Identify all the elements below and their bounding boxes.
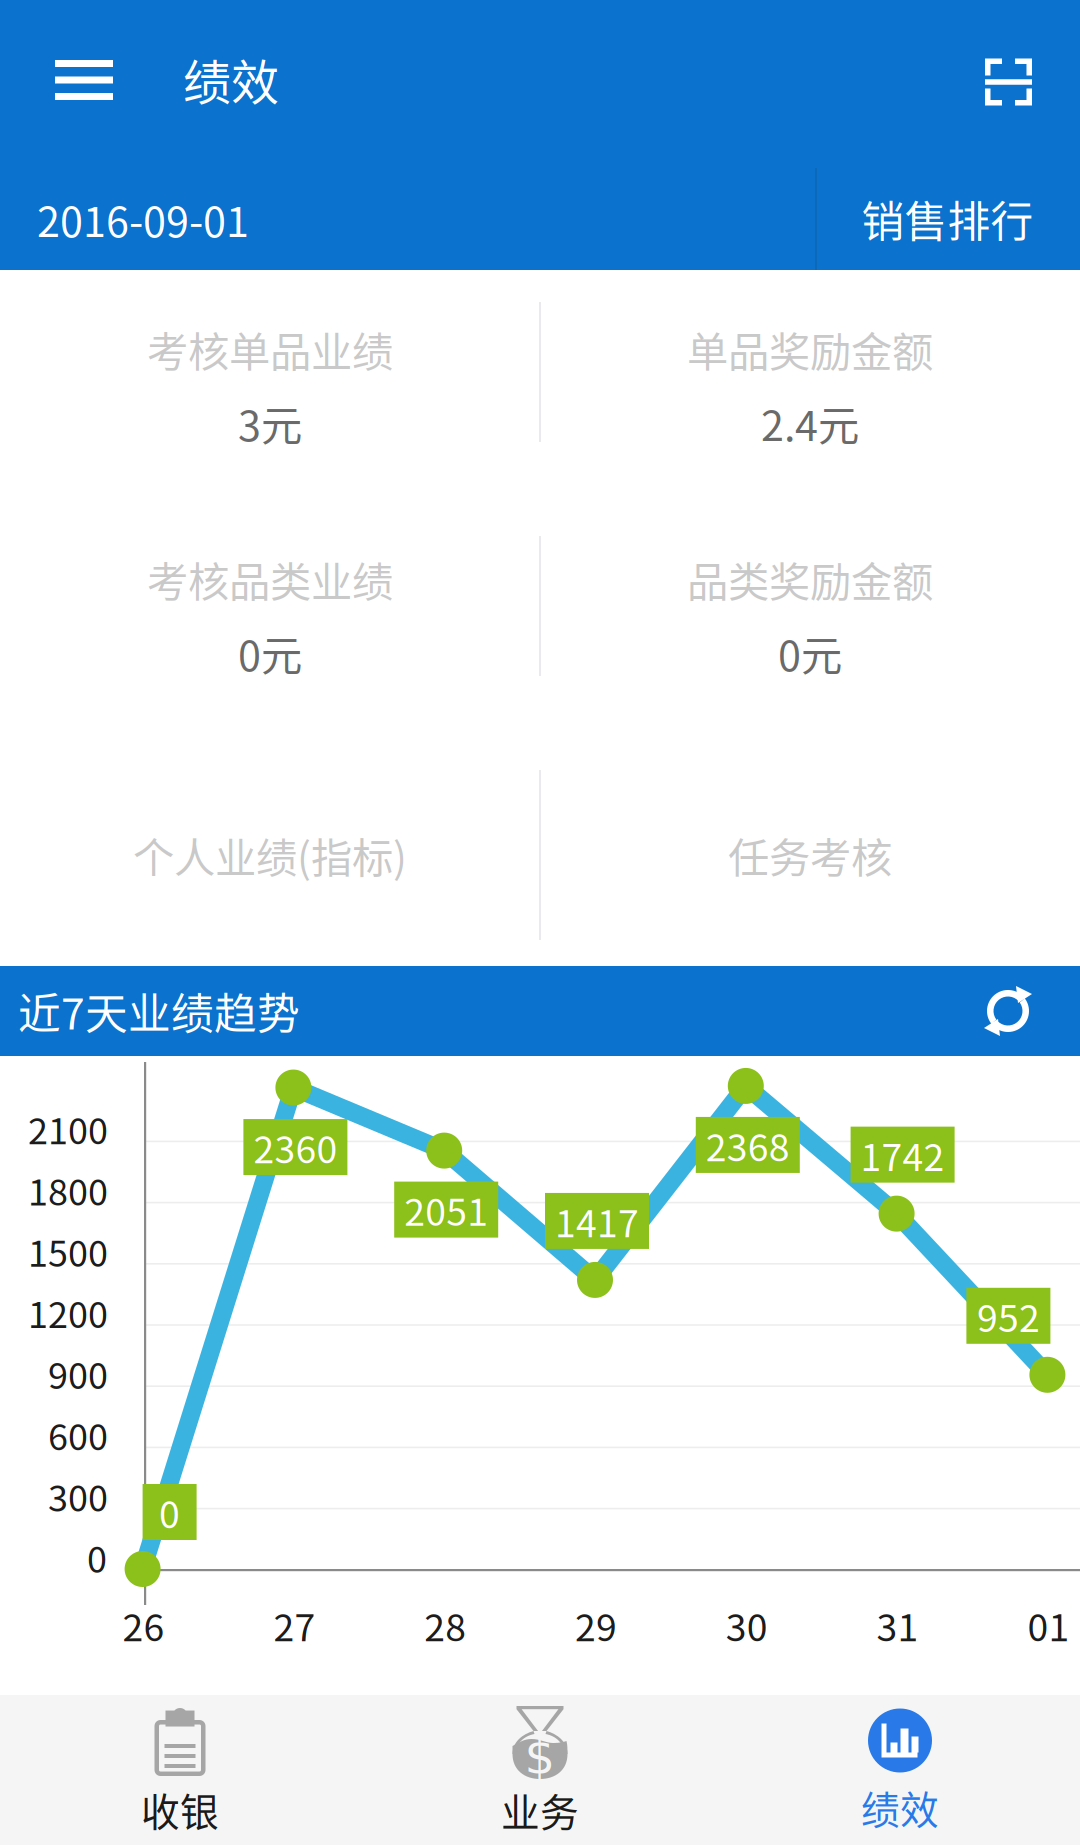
staticText: 业务: [501, 1782, 579, 1838]
button[interactable]: 收银: [0, 1695, 360, 1845]
staticText: 1800: [28, 1164, 108, 1216]
staticText: 收银: [141, 1781, 219, 1837]
staticText: 0元: [778, 623, 842, 683]
button[interactable]: 2016-09-01: [0, 150, 815, 270]
staticText: 2360: [253, 1120, 337, 1174]
staticText: 1500: [28, 1225, 108, 1277]
staticText: 考核单品业绩: [147, 319, 393, 379]
staticText: 2.4元: [761, 393, 859, 453]
staticText: 1417: [555, 1194, 639, 1248]
staticText: 0元: [238, 623, 302, 683]
staticText: 2016-09-01: [37, 189, 249, 249]
button[interactable]: Menu: [0, 0, 183, 150]
staticText: $: [524, 1729, 555, 1785]
staticText: 近7天业绩趋势: [18, 980, 300, 1042]
staticText: 31: [877, 1598, 919, 1652]
staticText: 27: [273, 1598, 315, 1652]
staticText: 2368: [706, 1118, 790, 1172]
staticText: 个人业绩(指标): [133, 825, 407, 885]
staticText: 1742: [861, 1128, 945, 1182]
staticText: 26: [123, 1598, 165, 1652]
staticText: 绩效: [861, 1779, 939, 1835]
staticText: 3元: [238, 393, 302, 453]
staticText: 300: [48, 1470, 108, 1522]
staticText: 任务考核: [728, 825, 892, 885]
staticText: 01: [1027, 1598, 1069, 1652]
staticText: 销售排行: [861, 188, 1033, 250]
staticText: 952: [977, 1289, 1040, 1343]
button[interactable]: 销售排行: [815, 150, 1080, 270]
staticText: 考核品类业绩: [147, 549, 393, 609]
staticText: 2051: [404, 1183, 488, 1237]
staticText: 品类奖励金额: [687, 549, 933, 609]
staticText: 600: [48, 1408, 108, 1461]
staticText: 2100: [28, 1102, 108, 1155]
staticText: 单品奖励金额: [687, 319, 933, 379]
staticText: 绩效: [183, 44, 279, 114]
staticText: 0: [87, 1531, 107, 1583]
button[interactable]: $: [360, 1695, 720, 1845]
staticText: 29: [575, 1598, 617, 1652]
button[interactable]: Refresh: [936, 966, 1080, 1056]
staticText: 1200: [28, 1286, 108, 1338]
staticText: 30: [726, 1598, 768, 1652]
staticText: 28: [424, 1598, 466, 1652]
staticText: 900: [48, 1347, 108, 1399]
staticText: 0: [159, 1485, 180, 1539]
button[interactable]: Scan: [945, 0, 1080, 150]
button[interactable]: 绩效: [720, 1695, 1080, 1845]
